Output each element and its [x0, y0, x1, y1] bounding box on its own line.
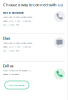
- staticText: Wait time for an expert is: [3, 69, 31, 72]
- staticText: about 5 minutes.: [3, 73, 20, 76]
- staticText: Get the number: [9, 83, 25, 87]
- button[interactable]: Chat: [3, 34, 65, 61]
- button[interactable]: Get the number: [5, 81, 29, 89]
- staticText: open. M-F, 7 AM - 4:30 PM: [3, 19, 31, 22]
- staticText: Chat: [3, 37, 10, 40]
- staticText: We'd love to help when we're: [3, 41, 32, 44]
- staticText: Call us: [3, 65, 13, 68]
- staticText: AM - 5 PM, PST: [3, 23, 19, 26]
- staticText: We'd love to help when we're: [3, 15, 32, 18]
- staticText: Get a callback: [3, 11, 24, 15]
- button[interactable]: Get a callback: [3, 7, 65, 33]
- staticText: Choose a way to connect with us: [3, 2, 63, 7]
- staticText: open. M-F, 7 AM - 4:30 PM: [3, 45, 31, 48]
- staticText: AM - 5 PM, PST: [3, 49, 19, 52]
